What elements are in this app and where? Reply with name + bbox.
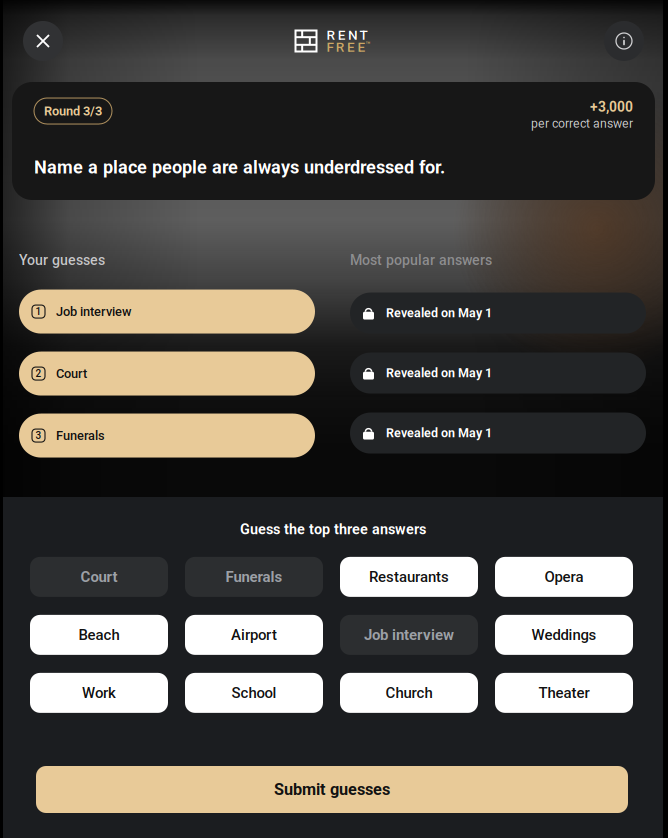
button[interactable]: Restaurants (340, 557, 478, 597)
staticText: Funerals (225, 568, 282, 586)
staticText: Round 3/3 (44, 103, 102, 118)
staticText: Funerals (56, 428, 105, 443)
staticText: FREE (326, 39, 365, 55)
staticText: Your guesses (19, 252, 105, 269)
staticText: Revealed on May 1 (386, 426, 492, 440)
staticText: Restaurants (369, 568, 449, 586)
staticText: Name a place people are always underdres… (34, 157, 445, 178)
button[interactable]: Airport (185, 615, 323, 655)
staticText: per correct answer (531, 116, 633, 131)
button[interactable]: Job interview (340, 615, 478, 655)
button[interactable]: 1 (19, 290, 315, 334)
button[interactable]: School (185, 673, 323, 713)
staticText: Revealed on May 1 (386, 366, 492, 380)
staticText: Work (82, 684, 116, 702)
staticText: 2 (35, 368, 41, 379)
button[interactable]: Submit guesses (36, 766, 628, 813)
staticText: Church (385, 684, 432, 702)
staticText: 3 (35, 430, 41, 441)
button[interactable]: Theater (495, 673, 633, 713)
staticText: Airport (231, 626, 277, 644)
button[interactable]: Beach (30, 615, 168, 655)
staticText: RENT (326, 27, 367, 43)
button[interactable]: Opera (495, 557, 633, 597)
button[interactable]: Church (340, 673, 478, 713)
button[interactable]: 3 (19, 414, 315, 458)
staticText: Court (80, 568, 117, 586)
staticText: Beach (78, 626, 119, 644)
button[interactable]: Close (23, 21, 63, 61)
staticText: Theater (538, 684, 589, 702)
staticText: School (231, 684, 276, 702)
staticText: ™ (365, 40, 370, 49)
staticText: +3,000 (590, 99, 633, 115)
staticText: Most popular answers (350, 252, 492, 269)
button[interactable]: Funerals (185, 557, 323, 597)
staticText: Court (56, 366, 87, 381)
button[interactable]: Weddings (495, 615, 633, 655)
staticText: Submit guesses (274, 780, 390, 799)
staticText: Opera (544, 568, 583, 586)
staticText: 1 (35, 306, 41, 317)
staticText: Job interview (364, 626, 454, 644)
button[interactable]: Work (30, 673, 168, 713)
staticText: Job interview (56, 304, 132, 319)
staticText: Weddings (531, 626, 596, 644)
staticText: Guess the top three answers (240, 521, 426, 538)
staticText: Revealed on May 1 (386, 306, 492, 320)
button[interactable]: Info (604, 21, 644, 61)
button[interactable]: 2 (19, 352, 315, 396)
button[interactable]: Court (30, 557, 168, 597)
